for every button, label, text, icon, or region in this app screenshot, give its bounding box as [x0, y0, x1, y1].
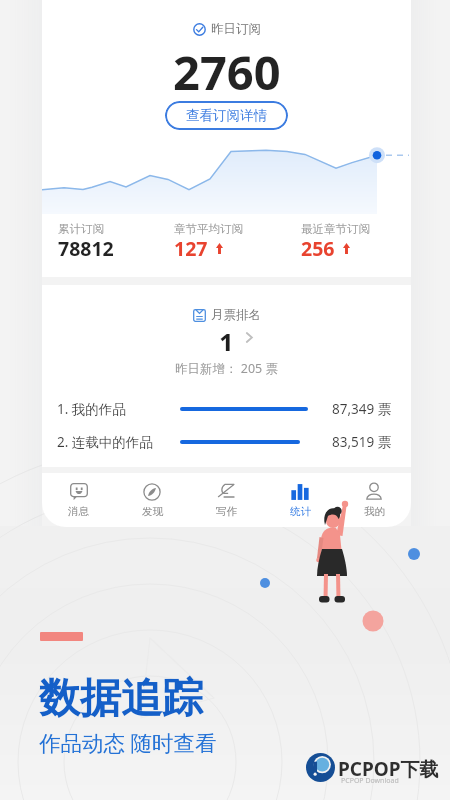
staticText: 83,519 票: [332, 433, 392, 451]
staticText: 2760: [173, 40, 281, 104]
button[interactable]: 统计: [263, 473, 337, 527]
staticText: 作品动态 随时查看: [39, 728, 217, 757]
staticText: 最近章节订阅: [301, 222, 370, 236]
staticText: 发现: [142, 505, 163, 518]
button[interactable]: 消息: [42, 473, 115, 527]
staticText: PCPOP下载: [338, 756, 439, 782]
staticText: PCPOP Download: [341, 776, 399, 786]
staticText: 87,349 票: [332, 400, 392, 418]
staticText: 昨日订阅: [211, 21, 261, 37]
button[interactable]: 写作: [189, 473, 263, 527]
staticText: 2. 连载中的作品: [57, 433, 153, 451]
staticText: 数据追踪: [39, 673, 203, 725]
staticText: 我的: [364, 505, 385, 518]
button[interactable]: 查看订阅详情: [165, 101, 288, 130]
staticText: 昨日新增： 205 票: [175, 360, 278, 377]
staticText: 月票排名: [211, 307, 261, 323]
button[interactable]: Open ranking: [242, 330, 257, 345]
staticText: 查看订阅详情: [186, 107, 267, 124]
staticText: 统计: [290, 505, 311, 518]
button[interactable]: 2. 连载中的作品: [42, 433, 411, 451]
staticText: 256: [301, 235, 335, 261]
staticText: 78812: [58, 235, 114, 261]
button[interactable]: 1. 我的作品: [42, 400, 411, 418]
button[interactable]: 我的: [337, 473, 411, 527]
staticText: 累计订阅: [58, 222, 104, 236]
staticText: 1. 我的作品: [57, 400, 126, 418]
staticText: 写作: [216, 505, 237, 518]
staticText: 127: [174, 235, 208, 261]
button[interactable]: 发现: [115, 473, 189, 527]
staticText: 章节平均订阅: [174, 222, 243, 236]
staticText: 消息: [68, 505, 89, 518]
staticText: 1: [219, 325, 234, 351]
